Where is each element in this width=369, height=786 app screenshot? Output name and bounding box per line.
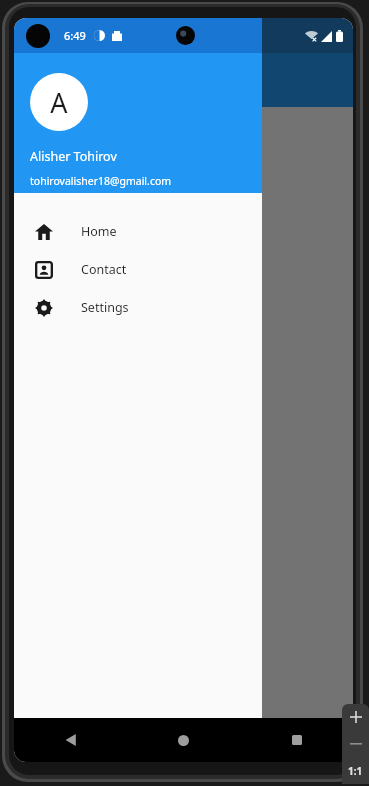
staticText: tohirovalisher18@gmail.com	[30, 174, 172, 188]
staticText: A	[50, 84, 68, 121]
button[interactable]: Back	[14, 718, 127, 762]
button[interactable]: Home	[127, 718, 240, 762]
button[interactable]: Zoom out	[342, 730, 369, 757]
button[interactable]: Contact	[14, 250, 262, 288]
button[interactable]: Settings	[14, 288, 262, 326]
staticText: Settings	[81, 299, 129, 316]
button[interactable]: Home	[14, 212, 262, 250]
staticText: Contact	[81, 261, 127, 278]
button[interactable]: Actual size	[342, 757, 369, 784]
button[interactable]: Zoom in	[342, 704, 369, 730]
button[interactable]: Recent apps	[240, 718, 353, 762]
staticText: 6:49	[64, 28, 86, 43]
staticText: Alisher Tohirov	[30, 148, 117, 165]
staticText: Home	[81, 223, 117, 240]
staticText: 1:1	[348, 764, 363, 778]
